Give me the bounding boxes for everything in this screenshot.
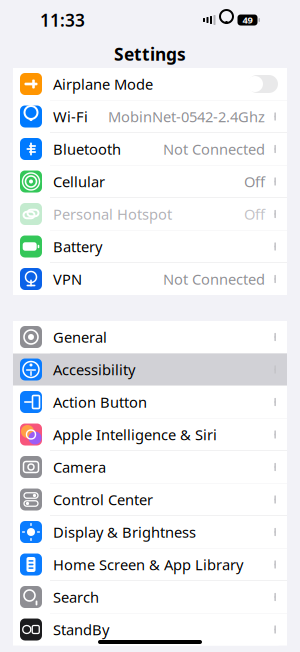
button[interactable]: StandBy xyxy=(13,613,287,645)
staticText: Off xyxy=(244,172,265,191)
staticText: Airplane Mode xyxy=(53,74,153,94)
staticText: Off xyxy=(244,204,265,224)
staticText: MobinNet-0542-2.4Ghz xyxy=(108,107,265,126)
staticText: Battery xyxy=(53,237,102,256)
staticText: Bluetooth xyxy=(53,139,121,159)
staticText: Apple Intelligence & Siri xyxy=(53,425,217,444)
button[interactable]: Camera xyxy=(13,451,287,483)
staticText: Personal Hotspot xyxy=(53,204,172,224)
button[interactable]: Home Screen & App Library xyxy=(13,548,287,580)
button[interactable]: Cellular xyxy=(13,165,287,197)
button[interactable]: Battery xyxy=(13,230,287,262)
button[interactable]: Wi-Fi xyxy=(13,100,287,132)
staticText: 11:33 xyxy=(40,8,85,31)
button[interactable]: Display & Brightness xyxy=(13,516,287,548)
button[interactable]: Control Center xyxy=(13,483,287,515)
staticText: Accessibility xyxy=(53,360,135,379)
staticText: Not Connected xyxy=(163,139,265,159)
staticText: VPN xyxy=(53,269,82,289)
staticText: Display & Brightness xyxy=(53,522,196,542)
staticText: Action Button xyxy=(53,392,147,412)
button[interactable]: Home xyxy=(98,640,202,644)
staticText: Cellular xyxy=(53,172,105,191)
button[interactable]: Apple Intelligence & Siri xyxy=(13,418,287,450)
staticText: Control Center xyxy=(53,490,153,509)
button[interactable]: Personal Hotspot xyxy=(13,198,287,230)
staticText: Search xyxy=(53,587,99,607)
staticText: 49 xyxy=(242,14,252,26)
button[interactable]: Search xyxy=(13,581,287,613)
button[interactable]: VPN xyxy=(13,263,287,295)
staticText: Wi-Fi xyxy=(53,107,88,126)
staticText: Camera xyxy=(53,457,106,477)
staticText: Settings xyxy=(114,42,186,65)
button[interactable]: Airplane Mode xyxy=(13,68,287,100)
button[interactable]: Action Button xyxy=(13,386,287,418)
button[interactable]: Accessibility xyxy=(13,353,287,385)
staticText: Not Connected xyxy=(163,269,265,289)
staticText: General xyxy=(53,327,107,347)
button[interactable]: General xyxy=(13,321,287,353)
staticText: StandBy xyxy=(53,620,109,639)
staticText: Home Screen & App Library xyxy=(53,555,243,574)
button[interactable]: Bluetooth xyxy=(13,133,287,165)
